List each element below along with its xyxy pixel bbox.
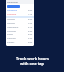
staticText: 6:50 (28, 30, 33, 33)
staticText: 0:00 (28, 41, 33, 44)
staticText: 8:00 (28, 18, 33, 21)
button[interactable]: Friday (7, 33, 33, 36)
staticText: Overtime (7, 13, 17, 16)
staticText: Monday (7, 18, 15, 21)
staticText: 8:10 (28, 26, 33, 29)
button[interactable]: Saturday (7, 37, 33, 40)
staticText: Wednesday (7, 26, 19, 29)
button[interactable]: Tuesday (7, 22, 33, 25)
button[interactable]: Sunday (7, 41, 33, 44)
staticText: Sunday (7, 41, 15, 44)
button[interactable]: Wednesday (7, 26, 33, 29)
button[interactable]: Clock in (7, 5, 20, 8)
staticText: with one tap (20, 61, 44, 66)
staticText: Tuesday (7, 22, 16, 25)
button[interactable]: Clocked in (7, 9, 33, 12)
staticText: Friday (7, 33, 14, 36)
staticText: Thursday (7, 30, 17, 33)
staticText: Saturday (7, 37, 16, 40)
button[interactable]: Thursday (7, 30, 33, 33)
button[interactable]: Monday (7, 18, 33, 21)
staticText: 7:45 (28, 22, 33, 25)
staticText: Clocked in (7, 9, 18, 12)
staticText: Timesheet (7, 1, 18, 4)
staticText: 9:00 (28, 9, 33, 12)
staticText: 3:30 (28, 37, 33, 40)
staticText: 1:15 (28, 13, 33, 16)
staticText: Track work hours (16, 56, 49, 61)
staticText: 8:00 (28, 33, 33, 36)
button[interactable]: Overtime (7, 13, 33, 16)
